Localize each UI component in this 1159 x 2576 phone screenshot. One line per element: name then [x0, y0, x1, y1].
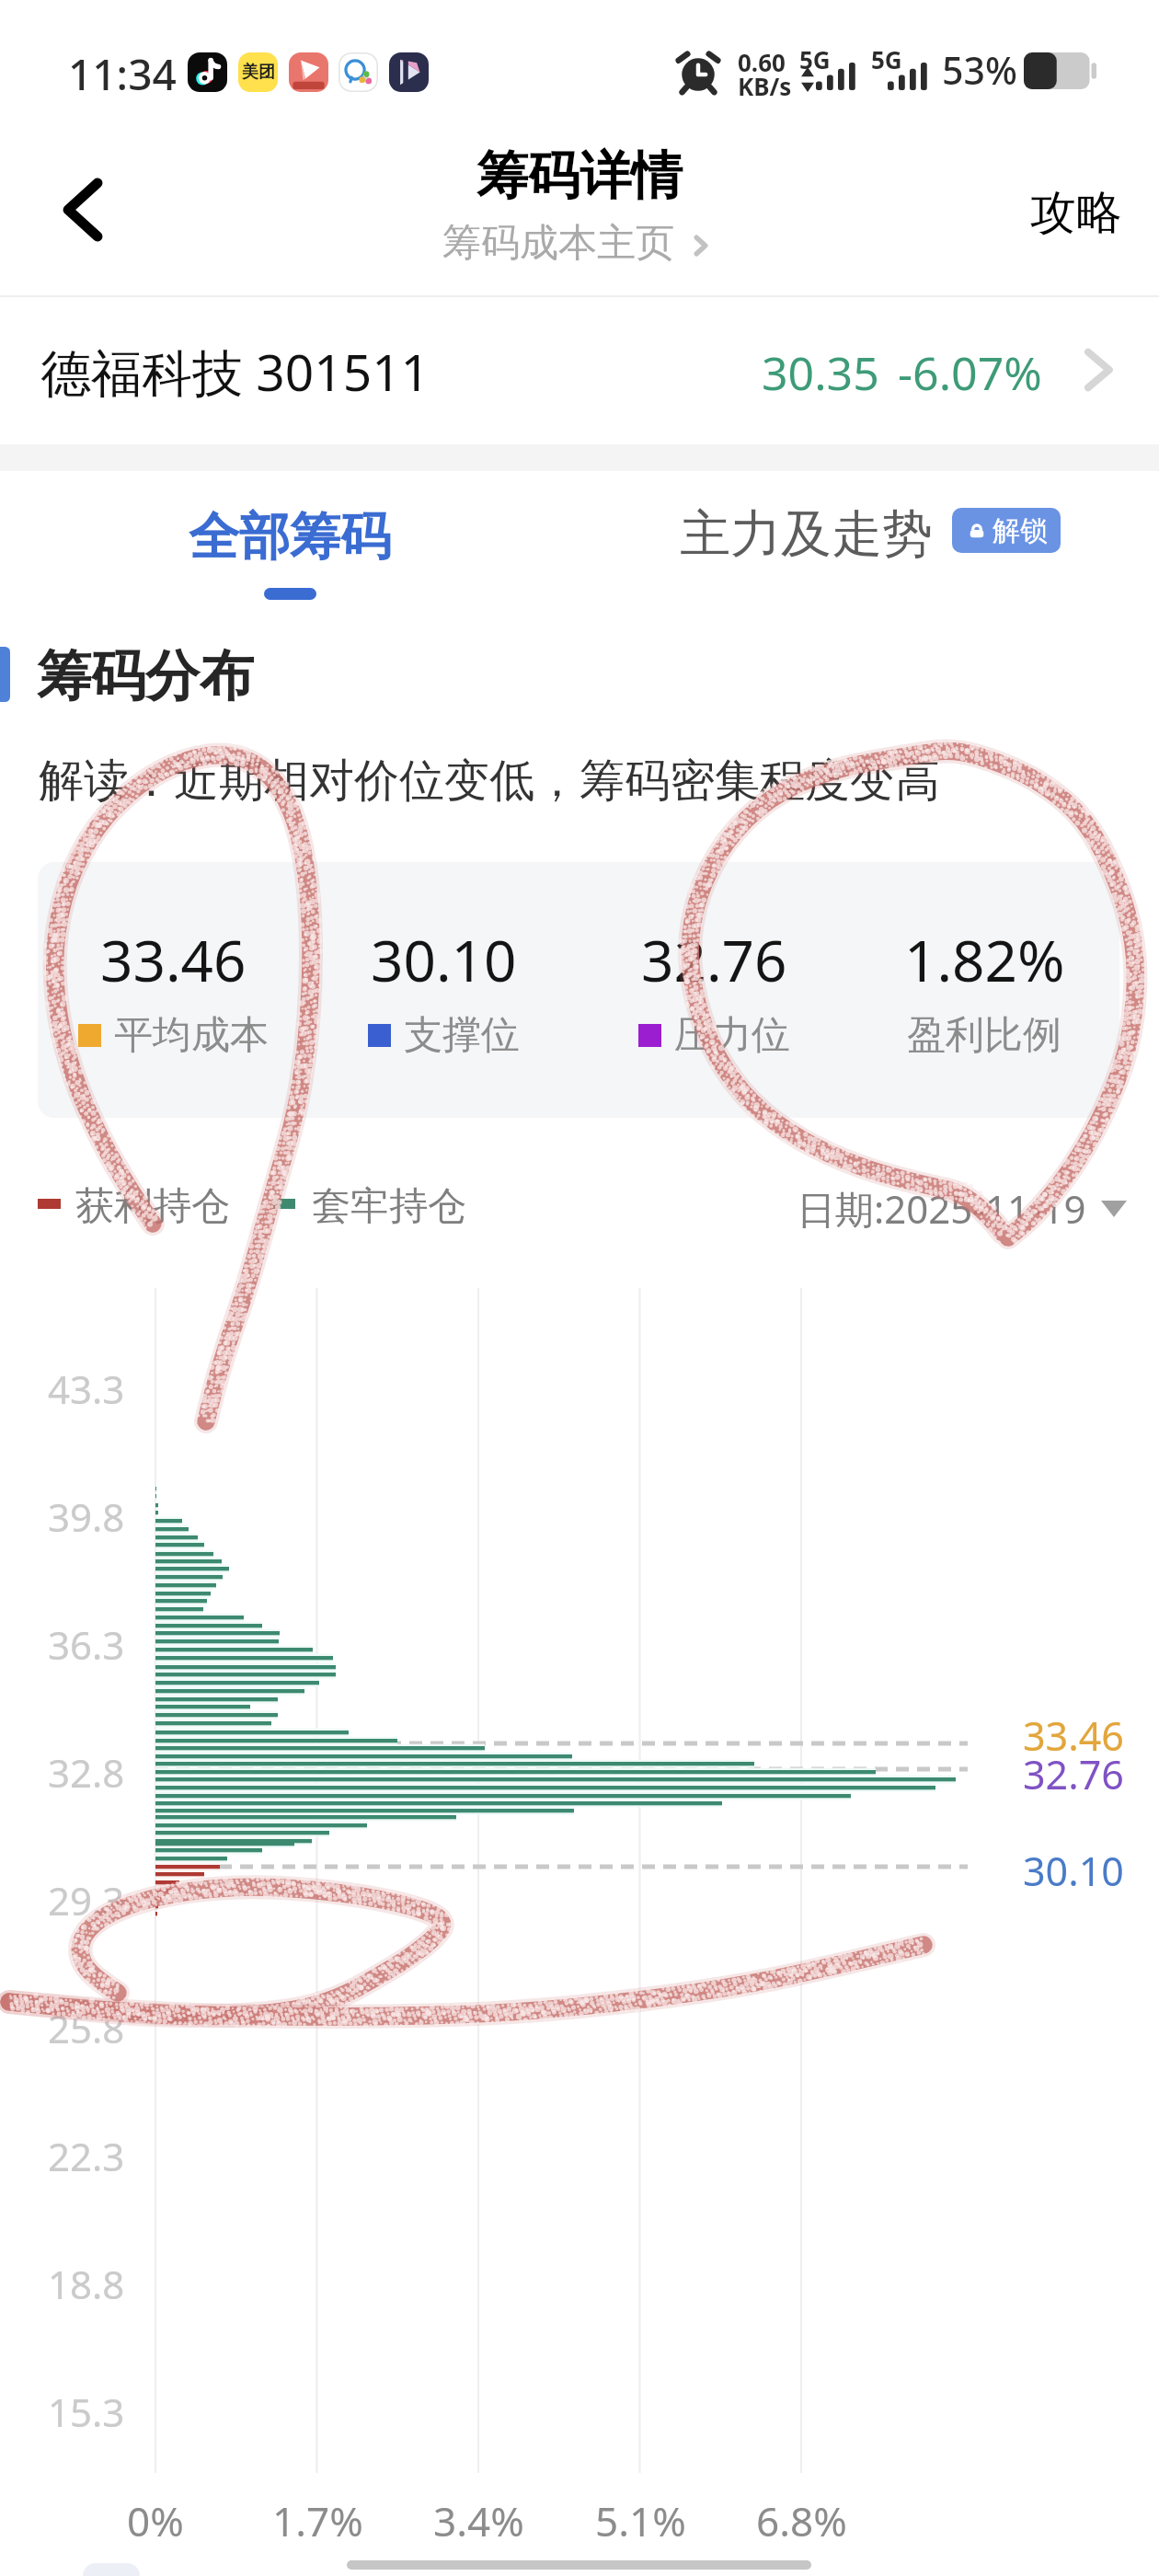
- staticText: 0%: [127, 2493, 184, 2548]
- staticText: 压力位: [674, 1011, 790, 1060]
- staticText: 5G: [799, 43, 831, 75]
- button[interactable]: 攻略: [1023, 175, 1130, 251]
- staticText: KB/s: [738, 70, 792, 102]
- staticText: 3.4%: [433, 2493, 524, 2548]
- button[interactable]: 德福科技 301511: [0, 297, 1159, 444]
- staticText: 53%: [942, 44, 1017, 96]
- staticText: 11:34: [68, 45, 177, 103]
- staticText: 支撑位: [404, 1011, 520, 1060]
- staticText: 29.3: [48, 1874, 125, 1926]
- staticText: 德福科技 301511: [40, 337, 430, 406]
- button[interactable]: 主力及走势: [662, 471, 1024, 591]
- staticText: 30.10: [371, 921, 517, 998]
- staticText: 5.1%: [595, 2493, 686, 2548]
- staticText: 日期:2025-11-19: [797, 1182, 1086, 1235]
- staticText: 6.8%: [756, 2493, 847, 2548]
- staticText: 解读：近期相对价位变低，筹码密集程度变高: [39, 753, 940, 810]
- staticText: 盈利比例: [907, 1011, 1061, 1060]
- staticText: 30.35: [762, 341, 879, 404]
- button[interactable]: Back: [39, 166, 127, 254]
- staticText: 筹码分布: [37, 642, 254, 710]
- staticText: 5G: [871, 43, 902, 75]
- staticText: 主力及走势: [680, 502, 933, 566]
- staticText: 获利持仓: [75, 1182, 230, 1231]
- staticText: 36.3: [48, 1618, 125, 1671]
- staticText: 32.8: [48, 1746, 125, 1799]
- staticText: 1.7%: [272, 2493, 363, 2548]
- staticText: 套牢持仓: [312, 1182, 466, 1231]
- staticText: 筹码成本主页: [442, 219, 674, 268]
- staticText: -6.07%: [898, 341, 1042, 404]
- staticText: 0.60: [738, 46, 786, 78]
- staticText: 43.3: [48, 1363, 125, 1415]
- staticText: 攻略: [1030, 184, 1122, 242]
- staticText: 33.46: [100, 921, 247, 998]
- staticText: 筹码详情: [476, 144, 683, 209]
- button[interactable]: 全部筹码: [151, 471, 429, 614]
- staticText: 32.76: [1023, 1747, 1124, 1801]
- staticText: 25.8: [48, 2002, 125, 2054]
- staticText: 30.10: [1023, 1844, 1124, 1898]
- staticText: 平均成本: [114, 1011, 269, 1060]
- staticText: 1.82%: [904, 921, 1065, 998]
- staticText: 22.3: [48, 2130, 125, 2182]
- staticText: 美团: [242, 62, 275, 83]
- staticText: 39.8: [48, 1490, 125, 1543]
- staticText: 解锁: [993, 513, 1048, 548]
- button[interactable]: 日期:2025-11-19: [797, 1182, 1127, 1235]
- staticText: 33.46: [1023, 1708, 1124, 1763]
- staticText: 18.8: [48, 2258, 125, 2310]
- button[interactable]: 筹码成本主页: [442, 219, 717, 268]
- staticText: 全部筹码: [189, 505, 391, 569]
- staticText: 15.3: [48, 2386, 125, 2438]
- staticText: 32.76: [641, 921, 787, 998]
